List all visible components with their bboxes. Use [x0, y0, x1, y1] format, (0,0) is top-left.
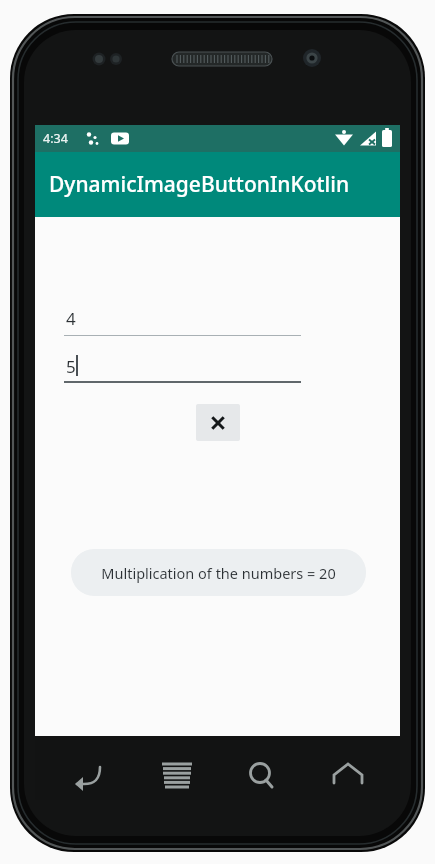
staticText: DynamicImageButtonInKotlin [49, 170, 350, 199]
staticText: Multiplication of the numbers = 20 [101, 563, 336, 583]
staticText: 5 [66, 355, 76, 378]
staticText: 4:34 [43, 130, 68, 147]
staticText: 4 [66, 307, 76, 330]
button[interactable]: Multiply [196, 404, 240, 441]
button[interactable]: 4 [64, 307, 301, 336]
button[interactable]: Multiplication of the numbers = 20 [71, 549, 366, 596]
button[interactable]: 5 [64, 355, 301, 383]
